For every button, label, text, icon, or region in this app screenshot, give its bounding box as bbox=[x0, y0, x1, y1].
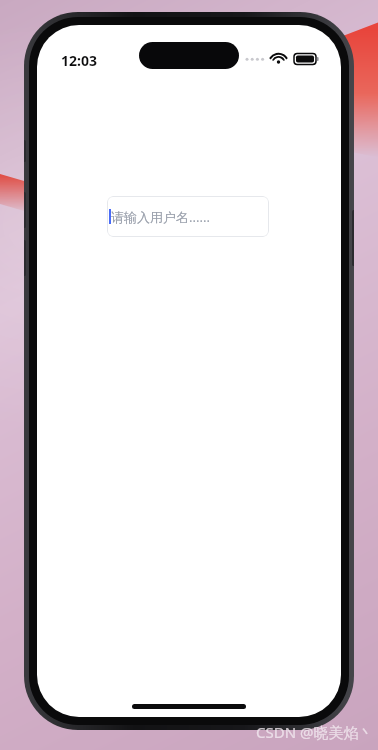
staticText: CSDN @晓美焰丶 bbox=[256, 722, 374, 742]
button[interactable]: 请输入用户名...... bbox=[107, 196, 269, 237]
staticText: 12:03 bbox=[61, 51, 97, 70]
staticText: 请输入用户名...... bbox=[111, 208, 210, 226]
